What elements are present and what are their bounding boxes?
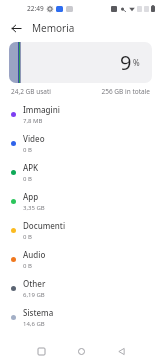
button[interactable]: Immagini bbox=[0, 100, 161, 129]
staticText: 0 B bbox=[23, 262, 32, 270]
button[interactable]: Audio bbox=[0, 245, 161, 274]
button[interactable]: APK bbox=[0, 158, 161, 187]
staticText: 14,6 GB bbox=[23, 320, 45, 328]
button[interactable]: Video bbox=[0, 129, 161, 158]
staticText: Memoria bbox=[32, 21, 75, 35]
staticText: % bbox=[133, 57, 140, 68]
staticText: APK bbox=[23, 162, 39, 173]
staticText: 0 B bbox=[23, 233, 32, 241]
button[interactable]: Back bbox=[6, 18, 26, 38]
staticText: 6,19 GB bbox=[23, 291, 45, 299]
staticText: Immagini bbox=[23, 104, 60, 115]
button[interactable]: App bbox=[0, 187, 161, 216]
button[interactable]: Home bbox=[61, 342, 101, 360]
staticText: Audio bbox=[23, 249, 46, 260]
staticText: 22:49 bbox=[27, 4, 44, 13]
staticText: 0 B bbox=[23, 175, 32, 183]
staticText: 9 bbox=[120, 49, 132, 76]
staticText: Video bbox=[23, 133, 45, 144]
button[interactable]: 9 bbox=[9, 42, 152, 83]
staticText: App bbox=[23, 191, 39, 202]
staticText: 0 B bbox=[23, 146, 32, 154]
staticText: 3,35 GB bbox=[23, 204, 45, 212]
staticText: 256 GB in totale bbox=[101, 87, 150, 96]
button[interactable]: Sistema bbox=[0, 303, 161, 332]
button[interactable]: Documenti bbox=[0, 216, 161, 245]
staticText: Sistema bbox=[23, 307, 54, 318]
staticText: 7,8 MB bbox=[23, 117, 43, 125]
staticText: Other bbox=[23, 278, 46, 289]
staticText: Documenti bbox=[23, 220, 66, 231]
staticText: 24,2 GB usati bbox=[11, 87, 52, 96]
button[interactable]: Recent apps bbox=[21, 342, 61, 360]
button[interactable]: Back bbox=[101, 342, 141, 360]
button[interactable]: Other bbox=[0, 274, 161, 303]
